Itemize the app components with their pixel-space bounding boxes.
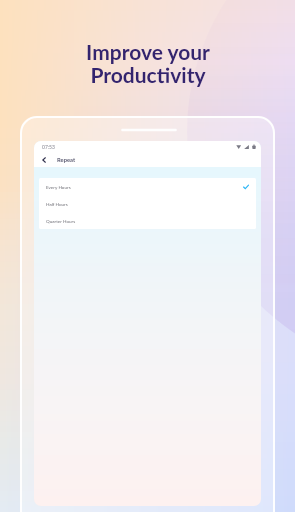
staticText: Every Hours [46,184,71,190]
staticText: Improve your [86,39,210,64]
staticText: Half Hours [46,201,68,207]
button[interactable]: Quarter Hours [39,212,256,229]
button[interactable]: Half Hours [39,195,256,212]
staticText: Repeat [57,156,76,163]
button[interactable]: Every Hours [39,178,256,195]
button[interactable]: Back [38,154,49,165]
staticText: Productivity [90,62,206,87]
staticText: Quarter Hours [46,218,76,224]
staticText: 07:53 [42,144,55,150]
